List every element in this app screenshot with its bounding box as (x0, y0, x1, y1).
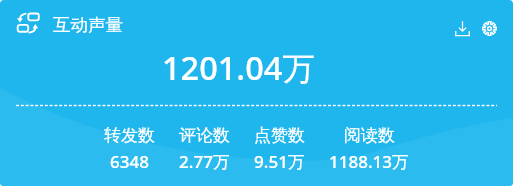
button[interactable]: Download (449, 15, 475, 41)
staticText: 评论数 (179, 125, 230, 146)
staticText: 1188.13万 (329, 150, 409, 173)
button[interactable]: 评论数 (179, 125, 230, 173)
staticText: 阅读数 (344, 125, 395, 146)
staticText: 互动声量 (53, 14, 123, 36)
staticText: 点赞数 (254, 125, 305, 146)
button[interactable]: 点赞数 (254, 125, 305, 173)
button[interactable]: Settings (476, 15, 502, 41)
button[interactable]: 阅读数 (329, 125, 409, 173)
staticText: 1201.04万 (162, 45, 315, 89)
staticText: 9.51万 (254, 150, 305, 173)
button[interactable]: 转发数 (104, 125, 155, 173)
staticText: 转发数 (104, 125, 155, 146)
staticText: 6348 (110, 150, 149, 173)
staticText: 2.77万 (179, 150, 230, 173)
